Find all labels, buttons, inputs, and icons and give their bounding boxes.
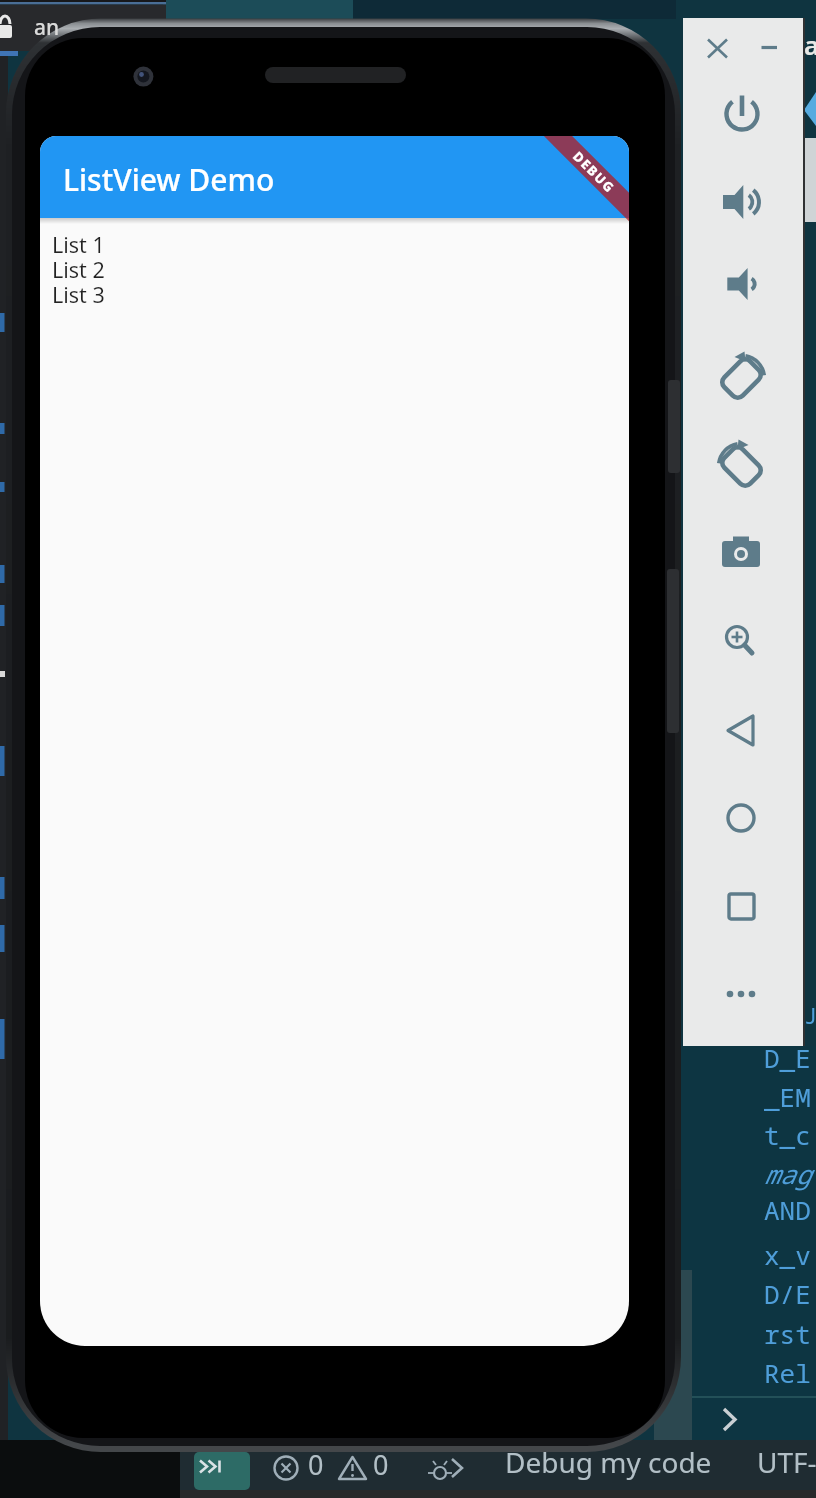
button[interactable]: [719, 972, 763, 1016]
staticText: 0: [373, 1446, 389, 1483]
staticText: ai: [804, 27, 816, 62]
button[interactable]: [719, 356, 763, 400]
staticText: rst: [764, 1316, 811, 1351]
button[interactable]: [719, 708, 763, 752]
staticText: D_E: [764, 1040, 811, 1075]
staticText: t_c: [764, 1117, 811, 1152]
button[interactable]: [719, 531, 763, 575]
staticText: an: [34, 13, 60, 42]
staticText: D/E: [764, 1276, 811, 1311]
button[interactable]: [758, 36, 780, 58]
button[interactable]: [719, 884, 763, 928]
staticText: List 3: [52, 280, 105, 305]
staticText: List 2: [52, 255, 105, 280]
button[interactable]: [719, 444, 763, 488]
button[interactable]: List 2: [52, 255, 612, 280]
button[interactable]: [706, 37, 730, 61]
button[interactable]: [194, 1452, 250, 1490]
button[interactable]: List 1: [52, 230, 612, 255]
button[interactable]: [719, 92, 763, 136]
staticText: Rel: [764, 1355, 811, 1390]
button[interactable]: [719, 796, 763, 840]
staticText: _EM: [764, 1079, 811, 1114]
staticText: 0: [308, 1446, 324, 1483]
button[interactable]: [719, 262, 763, 306]
staticText: x_v: [764, 1237, 811, 1272]
button[interactable]: [716, 1402, 744, 1436]
button[interactable]: [719, 180, 763, 224]
staticText: ListView Demo: [63, 159, 275, 200]
staticText: mag: [764, 1156, 811, 1191]
button[interactable]: List 3: [52, 280, 612, 305]
staticText: UTF-8: [757, 1443, 816, 1481]
button[interactable]: Debug my code: [505, 1443, 712, 1481]
staticText: List 1: [52, 230, 105, 255]
staticText: AND: [764, 1192, 811, 1227]
staticText: DEBUG: [569, 147, 619, 197]
staticText: JC: [804, 1000, 816, 1030]
button[interactable]: [719, 618, 763, 662]
